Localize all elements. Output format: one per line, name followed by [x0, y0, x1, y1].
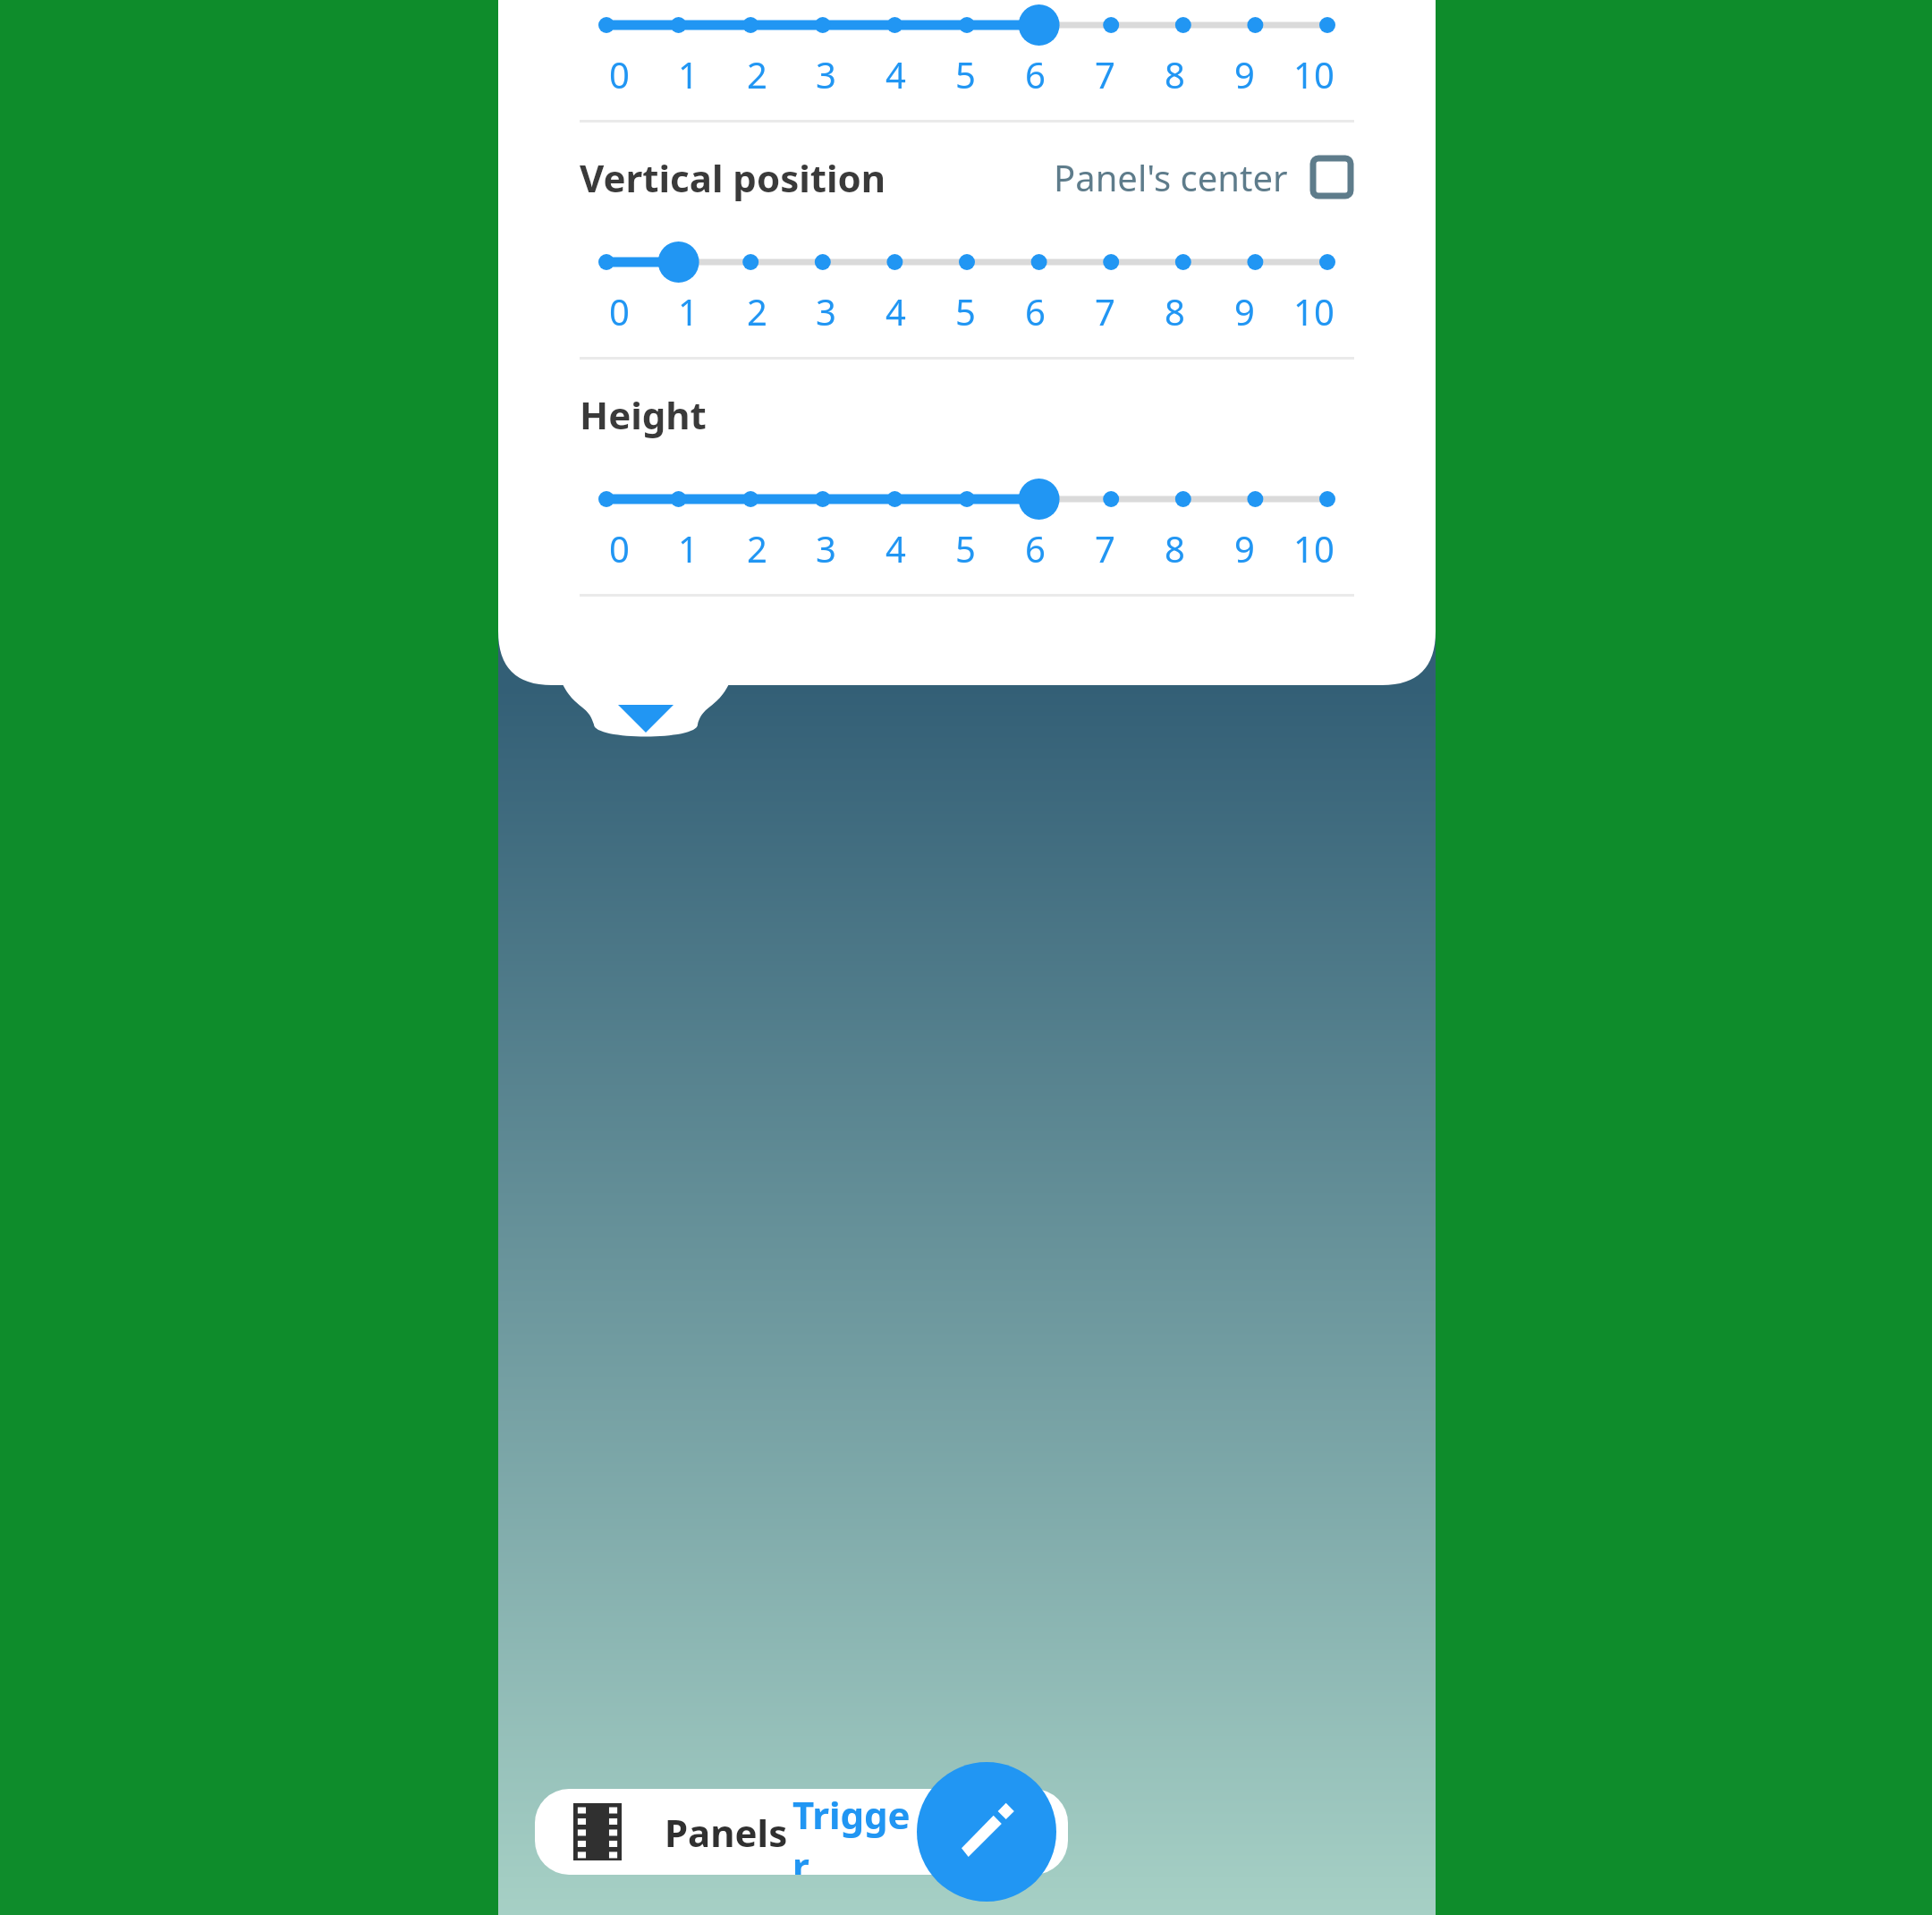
- staticText: 4: [885, 50, 906, 98]
- staticText: 6: [1025, 50, 1046, 98]
- button[interactable]: Panels: [660, 1789, 792, 1875]
- button[interactable]: Colors: [926, 1789, 1059, 1875]
- button[interactable]: 0: [498, 0, 1436, 98]
- staticText: 4: [885, 524, 906, 572]
- staticText: 10: [1293, 524, 1335, 572]
- staticText: 10: [1293, 50, 1335, 98]
- staticText: 1: [678, 50, 699, 98]
- button[interactable]: Edit: [917, 1762, 1056, 1902]
- staticText: 8: [1165, 50, 1185, 98]
- staticText: 6: [1025, 287, 1046, 335]
- staticText: 2: [747, 524, 767, 572]
- staticText: 3: [816, 524, 836, 572]
- staticText: 10: [1293, 287, 1335, 335]
- button[interactable]: 0: [498, 474, 1436, 572]
- staticText: 9: [1234, 287, 1255, 335]
- button[interactable]: Panel's center: [1054, 153, 1354, 201]
- staticText: 2: [747, 287, 767, 335]
- staticText: 7: [1095, 524, 1115, 572]
- staticText: 1: [678, 524, 699, 572]
- staticText: 9: [1234, 524, 1255, 572]
- staticText: 8: [1165, 524, 1185, 572]
- staticText: Panel's center: [1054, 153, 1288, 201]
- staticText: 3: [816, 287, 836, 335]
- staticText: Panels: [665, 1807, 788, 1858]
- staticText: Vertical position: [580, 152, 886, 203]
- staticText: 9: [1234, 50, 1255, 98]
- staticText: 4: [885, 287, 906, 335]
- staticText: 7: [1095, 287, 1115, 335]
- staticText: 5: [955, 524, 976, 572]
- staticText: 2: [747, 50, 767, 98]
- staticText: 1: [678, 287, 699, 335]
- staticText: 0: [609, 50, 630, 98]
- staticText: 0: [609, 287, 630, 335]
- staticText: 8: [1165, 287, 1185, 335]
- button[interactable]: Trigger: [792, 1789, 926, 1875]
- staticText: Height: [580, 389, 707, 440]
- button[interactable]: Frames: [535, 1789, 660, 1875]
- staticText: 5: [955, 50, 976, 98]
- staticText: Colors: [934, 1807, 1052, 1858]
- staticText: Trigger: [792, 1789, 926, 1875]
- staticText: 7: [1095, 50, 1115, 98]
- staticText: 3: [816, 50, 836, 98]
- staticText: 5: [955, 287, 976, 335]
- button[interactable]: 0: [498, 237, 1436, 335]
- staticText: 6: [1025, 524, 1046, 572]
- staticText: 0: [609, 524, 630, 572]
